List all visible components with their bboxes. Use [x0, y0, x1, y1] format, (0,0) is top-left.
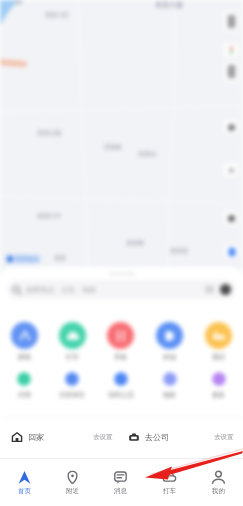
button[interactable]: 打车 — [145, 459, 194, 506]
button[interactable]: 美食 — [96, 322, 145, 361]
staticText: 某某馆 — [170, 247, 188, 255]
staticText: 打车 — [66, 353, 79, 361]
staticText: 去设置 — [93, 433, 113, 441]
button[interactable]: 回家 — [0, 422, 121, 452]
staticText: 代驾 — [18, 391, 31, 399]
button[interactable]: 代驾 — [0, 371, 48, 399]
staticText: 首页 — [18, 487, 31, 495]
button[interactable]: 我的 — [194, 459, 243, 506]
staticText: 某某小区 — [45, 11, 69, 19]
staticText: 搜索地点、公交、地铁 — [26, 285, 96, 294]
button[interactable]: Scale — [224, 163, 238, 177]
button[interactable]: 酒店 — [194, 322, 243, 361]
button[interactable]: Traffic — [224, 43, 238, 57]
staticText: 某某大学 — [37, 212, 61, 220]
button[interactable]: 加油 — [145, 322, 194, 361]
staticText: 更多 — [212, 391, 225, 399]
staticText: 某某公园 — [37, 129, 61, 137]
staticText: 去公司 — [145, 432, 169, 442]
button[interactable]: 路线 — [0, 322, 48, 361]
staticText: 共享单车 — [59, 391, 85, 399]
button[interactable]: 打车 — [48, 322, 96, 361]
button[interactable]: 首页 — [0, 459, 48, 506]
staticText: 我的 — [212, 487, 225, 495]
staticText: 地铁 — [163, 391, 176, 399]
button[interactable]: Report — [224, 62, 238, 81]
staticText: 某某楼 — [126, 239, 144, 247]
button[interactable]: 地铁 — [145, 371, 194, 399]
button[interactable]: Zoom in — [224, 120, 238, 134]
button[interactable]: 消息 — [96, 459, 145, 506]
staticText: 美食 — [114, 353, 127, 361]
staticText: 某某大厦 — [155, 0, 183, 9]
button[interactable]: 附近 — [48, 459, 96, 506]
staticText: 附近 — [66, 487, 79, 495]
staticText: 某某街 — [138, 150, 156, 158]
button[interactable]: Compass — [224, 211, 238, 225]
staticText: 打车 — [163, 487, 176, 495]
button[interactable]: 共享单车 — [48, 371, 96, 399]
staticText: 消息 — [114, 487, 127, 495]
button[interactable]: 去公司 — [121, 422, 243, 452]
staticText: 实时公交 — [108, 391, 134, 399]
button[interactable]: 搜索地点、公交、地铁 — [7, 280, 236, 299]
staticText: 加油 — [163, 353, 176, 361]
button[interactable]: Layers — [224, 12, 238, 31]
button[interactable]: 实时公交 — [96, 371, 145, 399]
button[interactable]: Locate me — [225, 245, 238, 258]
staticText: 某某 — [54, 254, 66, 262]
staticText: 某某路 — [104, 143, 122, 151]
button[interactable]: 更多 — [194, 371, 243, 399]
staticText: 酒店 — [212, 353, 225, 361]
staticText: 某某地点 — [15, 255, 39, 263]
staticText: 回家 — [28, 432, 44, 442]
staticText: 路线 — [18, 353, 31, 361]
staticText: 去设置 — [214, 433, 234, 441]
